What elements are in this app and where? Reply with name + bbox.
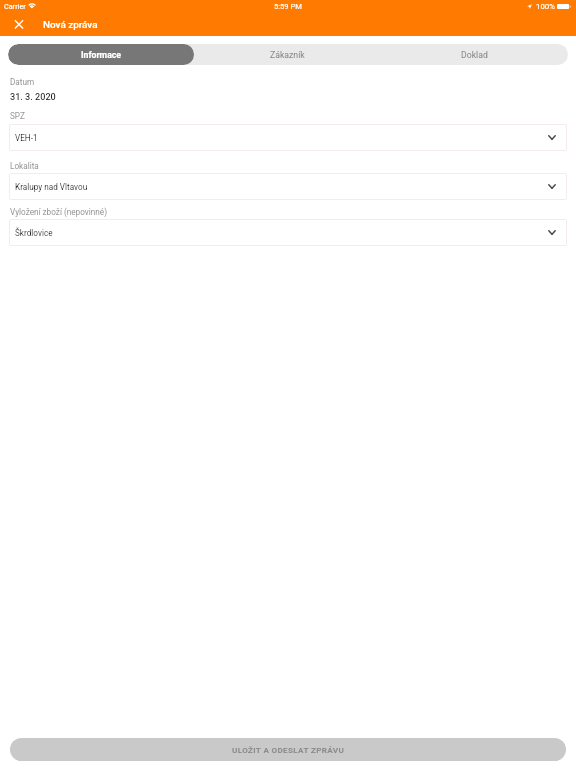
- staticText: ULOŽIT A ODESLAT ZPRÁVU: [232, 745, 345, 754]
- staticText: Datum: [10, 77, 35, 87]
- button[interactable]: Doklad: [381, 44, 568, 65]
- staticText: Doklad: [461, 50, 488, 60]
- staticText: Vyložení zboží (nepovinné): [10, 207, 108, 217]
- staticText: VEH-1: [15, 133, 38, 143]
- button[interactable]: VEH-1: [9, 124, 567, 151]
- button[interactable]: Zákazník: [194, 44, 381, 65]
- staticText: 100%: [536, 2, 555, 11]
- staticText: Kralupy nad Vltavou: [15, 182, 88, 192]
- staticText: Lokalita: [10, 161, 39, 171]
- staticText: 31. 3. 2020: [10, 92, 56, 103]
- staticText: Zákazník: [270, 50, 305, 60]
- button[interactable]: Škrdlovice: [9, 219, 567, 246]
- staticText: Carrier: [4, 2, 26, 11]
- staticText: 5:59 PM: [274, 2, 302, 11]
- staticText: Informace: [81, 50, 121, 60]
- button[interactable]: Close: [9, 15, 28, 34]
- staticText: SPZ: [10, 111, 25, 121]
- staticText: Nová zpráva: [43, 19, 98, 31]
- button[interactable]: Informace: [8, 44, 194, 65]
- staticText: Škrdlovice: [15, 228, 53, 238]
- button[interactable]: ULOŽIT A ODESLAT ZPRÁVU: [10, 738, 566, 761]
- button[interactable]: Kralupy nad Vltavou: [9, 173, 567, 200]
